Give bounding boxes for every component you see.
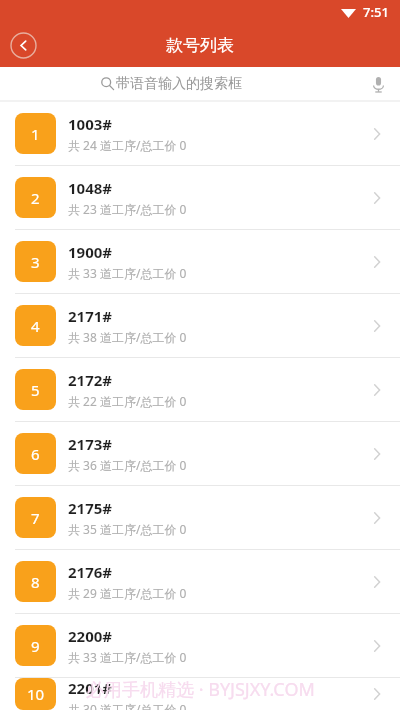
staticText: 2200# <box>68 626 113 646</box>
staticText: 1003# <box>68 114 113 134</box>
staticText: 共 30 道工序/总工价 0 <box>68 701 187 710</box>
button[interactable]: 3 <box>0 230 400 293</box>
staticText: 共 38 道工序/总工价 0 <box>68 329 187 345</box>
staticText: 共 22 道工序/总工价 0 <box>68 393 187 409</box>
button[interactable]: 5 <box>0 358 400 421</box>
staticText: 共 23 道工序/总工价 0 <box>68 201 187 217</box>
staticText: 带语音输入的搜索框 <box>116 75 242 93</box>
staticText: 2172# <box>68 370 113 390</box>
staticText: 款号列表 <box>166 35 234 56</box>
staticText: 3 <box>31 252 40 272</box>
staticText: 共 36 道工序/总工价 0 <box>68 457 187 473</box>
button[interactable]: 2 <box>0 166 400 229</box>
staticText: 必用手机精选 · BYJSJXY.COM <box>86 677 315 702</box>
staticText: 2171# <box>68 306 113 326</box>
staticText: 1900# <box>68 242 113 262</box>
staticText: 2201# <box>68 678 113 698</box>
button[interactable]: 带语音输入的搜索框 <box>0 67 400 100</box>
staticText: 2 <box>31 188 40 208</box>
button[interactable]: 1 <box>0 102 400 165</box>
staticText: 7:51 <box>363 3 389 21</box>
button[interactable]: Back <box>10 32 37 59</box>
staticText: 共 24 道工序/总工价 0 <box>68 137 187 153</box>
staticText: 2173# <box>68 434 113 454</box>
button[interactable]: 8 <box>0 550 400 613</box>
staticText: 9 <box>31 636 40 656</box>
staticText: 1 <box>31 124 40 144</box>
button[interactable]: 10 <box>0 678 400 710</box>
staticText: 共 35 道工序/总工价 0 <box>68 521 187 537</box>
button[interactable]: 9 <box>0 614 400 677</box>
button[interactable]: 6 <box>0 422 400 485</box>
staticText: 2176# <box>68 562 113 582</box>
button[interactable]: Voice input <box>363 69 393 99</box>
staticText: 共 33 道工序/总工价 0 <box>68 265 187 281</box>
button[interactable]: 7 <box>0 486 400 549</box>
staticText: 共 29 道工序/总工价 0 <box>68 585 187 601</box>
staticText: 7 <box>31 508 40 528</box>
staticText: 8 <box>31 572 40 592</box>
staticText: 10 <box>27 684 45 704</box>
staticText: 4 <box>31 316 40 336</box>
staticText: 5 <box>31 380 40 400</box>
staticText: 6 <box>31 444 40 464</box>
staticText: 共 33 道工序/总工价 0 <box>68 649 187 665</box>
button[interactable]: 4 <box>0 294 400 357</box>
staticText: 2175# <box>68 498 113 518</box>
staticText: 1048# <box>68 178 113 198</box>
